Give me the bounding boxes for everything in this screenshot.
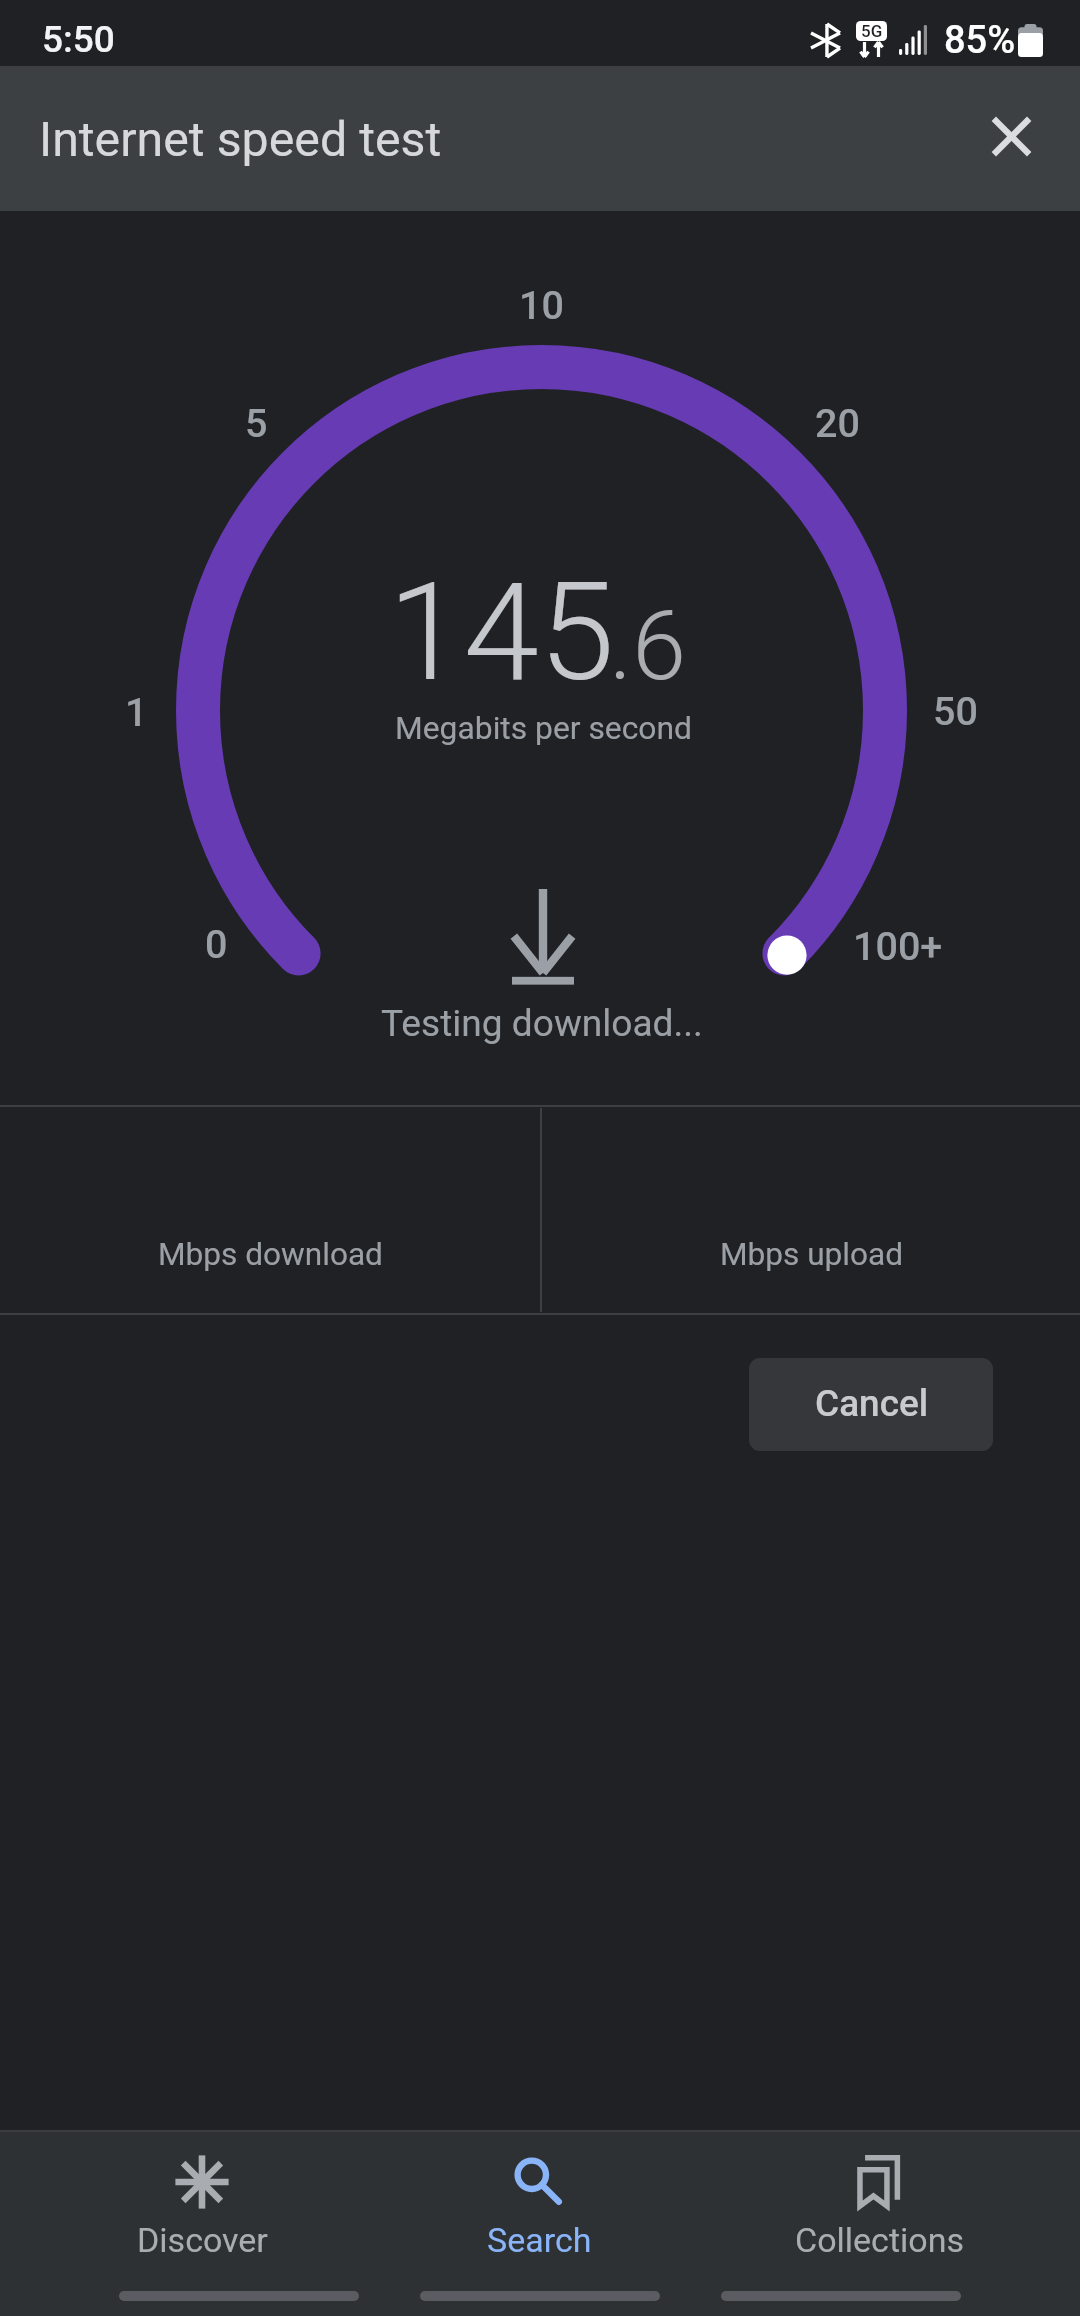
staticText: 10 [519,282,564,328]
button[interactable]: Cancel [749,1358,993,1451]
staticText: Discover [137,2220,268,2260]
staticText: Testing download... [381,1002,703,1045]
staticText: Mbps upload [720,1236,904,1273]
staticText: 100+ [853,923,943,969]
button[interactable]: Mbps upload [540,1108,1080,1312]
button[interactable]: Close [967,92,1055,180]
button[interactable]: Discover [0,2130,360,2290]
staticText: 145 [388,553,615,712]
button[interactable]: Mbps download [0,1108,540,1312]
staticText: Cancel [815,1382,929,1425]
staticText: 50 [933,688,978,734]
staticText: 5G [861,21,883,41]
button[interactable]: Collections [720,2130,1080,2290]
staticText: 5 [245,400,268,446]
button[interactable]: Search [360,2130,720,2290]
staticText: Megabits per second [395,709,692,746]
staticText: Internet speed test [39,111,442,168]
staticText: 0 [205,921,228,967]
staticText: Mbps download [158,1236,383,1273]
staticText: 5:50 [42,18,115,61]
staticText: 85% [944,18,1016,63]
staticText: Collections [795,2220,964,2260]
staticText: 20 [815,400,860,446]
staticText: Search [487,2220,592,2260]
staticText: .6 [609,589,686,703]
staticText: 1 [125,689,148,735]
